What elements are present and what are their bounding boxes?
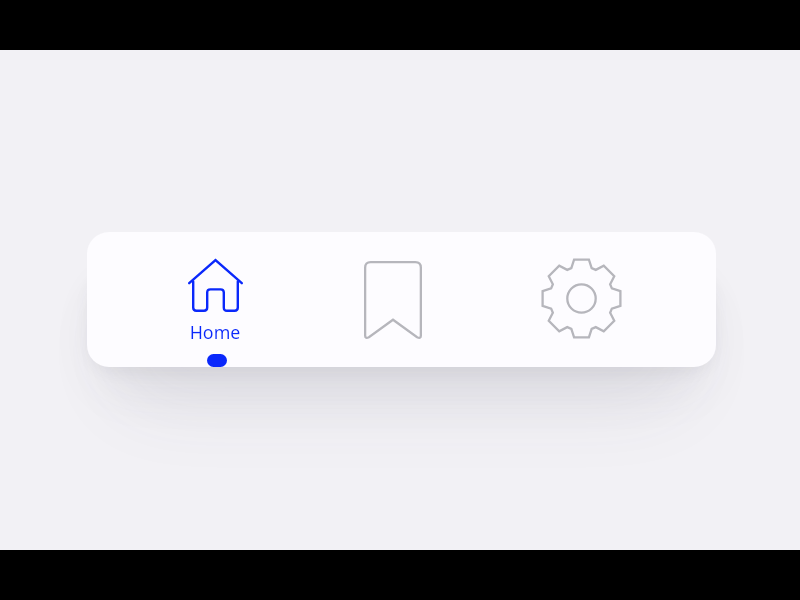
button[interactable]: Settings — [467, 232, 715, 367]
button[interactable]: Bookmarks — [267, 232, 467, 367]
button[interactable]: Home — [87, 232, 267, 367]
other: Bookmarks — [364, 261, 422, 340]
other: Settings — [542, 259, 621, 338]
other: Home — [188, 259, 243, 312]
staticText: Home — [155, 320, 275, 344]
